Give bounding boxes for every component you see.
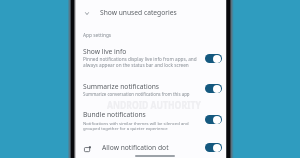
button[interactable] — [73, 104, 226, 136]
button[interactable]: Toggle setting on — [205, 54, 222, 63]
staticText: grouped together for a quieter experienc… — [83, 125, 168, 131]
button[interactable] — [73, 41, 226, 73]
button[interactable]: Allow notification dot — [73, 139, 226, 156]
staticText: Pinned notifications display live info f… — [83, 56, 197, 62]
staticText: Summarize notifications — [83, 82, 160, 91]
staticText: Allow notification dot — [102, 143, 169, 152]
staticText: Show live info — [83, 47, 127, 56]
staticText: Show unused categories — [100, 8, 177, 17]
button[interactable]: Toggle setting on — [205, 115, 222, 124]
staticText: Summarize conversation notifications fro… — [83, 91, 190, 97]
staticText: Notifications with similar themes will b… — [83, 120, 189, 126]
staticText: ANDROID AUTHORITY — [107, 98, 201, 112]
button[interactable]: Show unused categories — [73, 4, 226, 23]
staticText: Bundle notifications — [83, 110, 146, 119]
staticText: App settings — [83, 32, 112, 39]
button[interactable]: Toggle setting on — [205, 84, 222, 93]
button[interactable] — [73, 75, 226, 102]
button[interactable]: Toggle setting on — [205, 143, 222, 152]
staticText: always appear on the status bar and lock… — [83, 62, 189, 68]
